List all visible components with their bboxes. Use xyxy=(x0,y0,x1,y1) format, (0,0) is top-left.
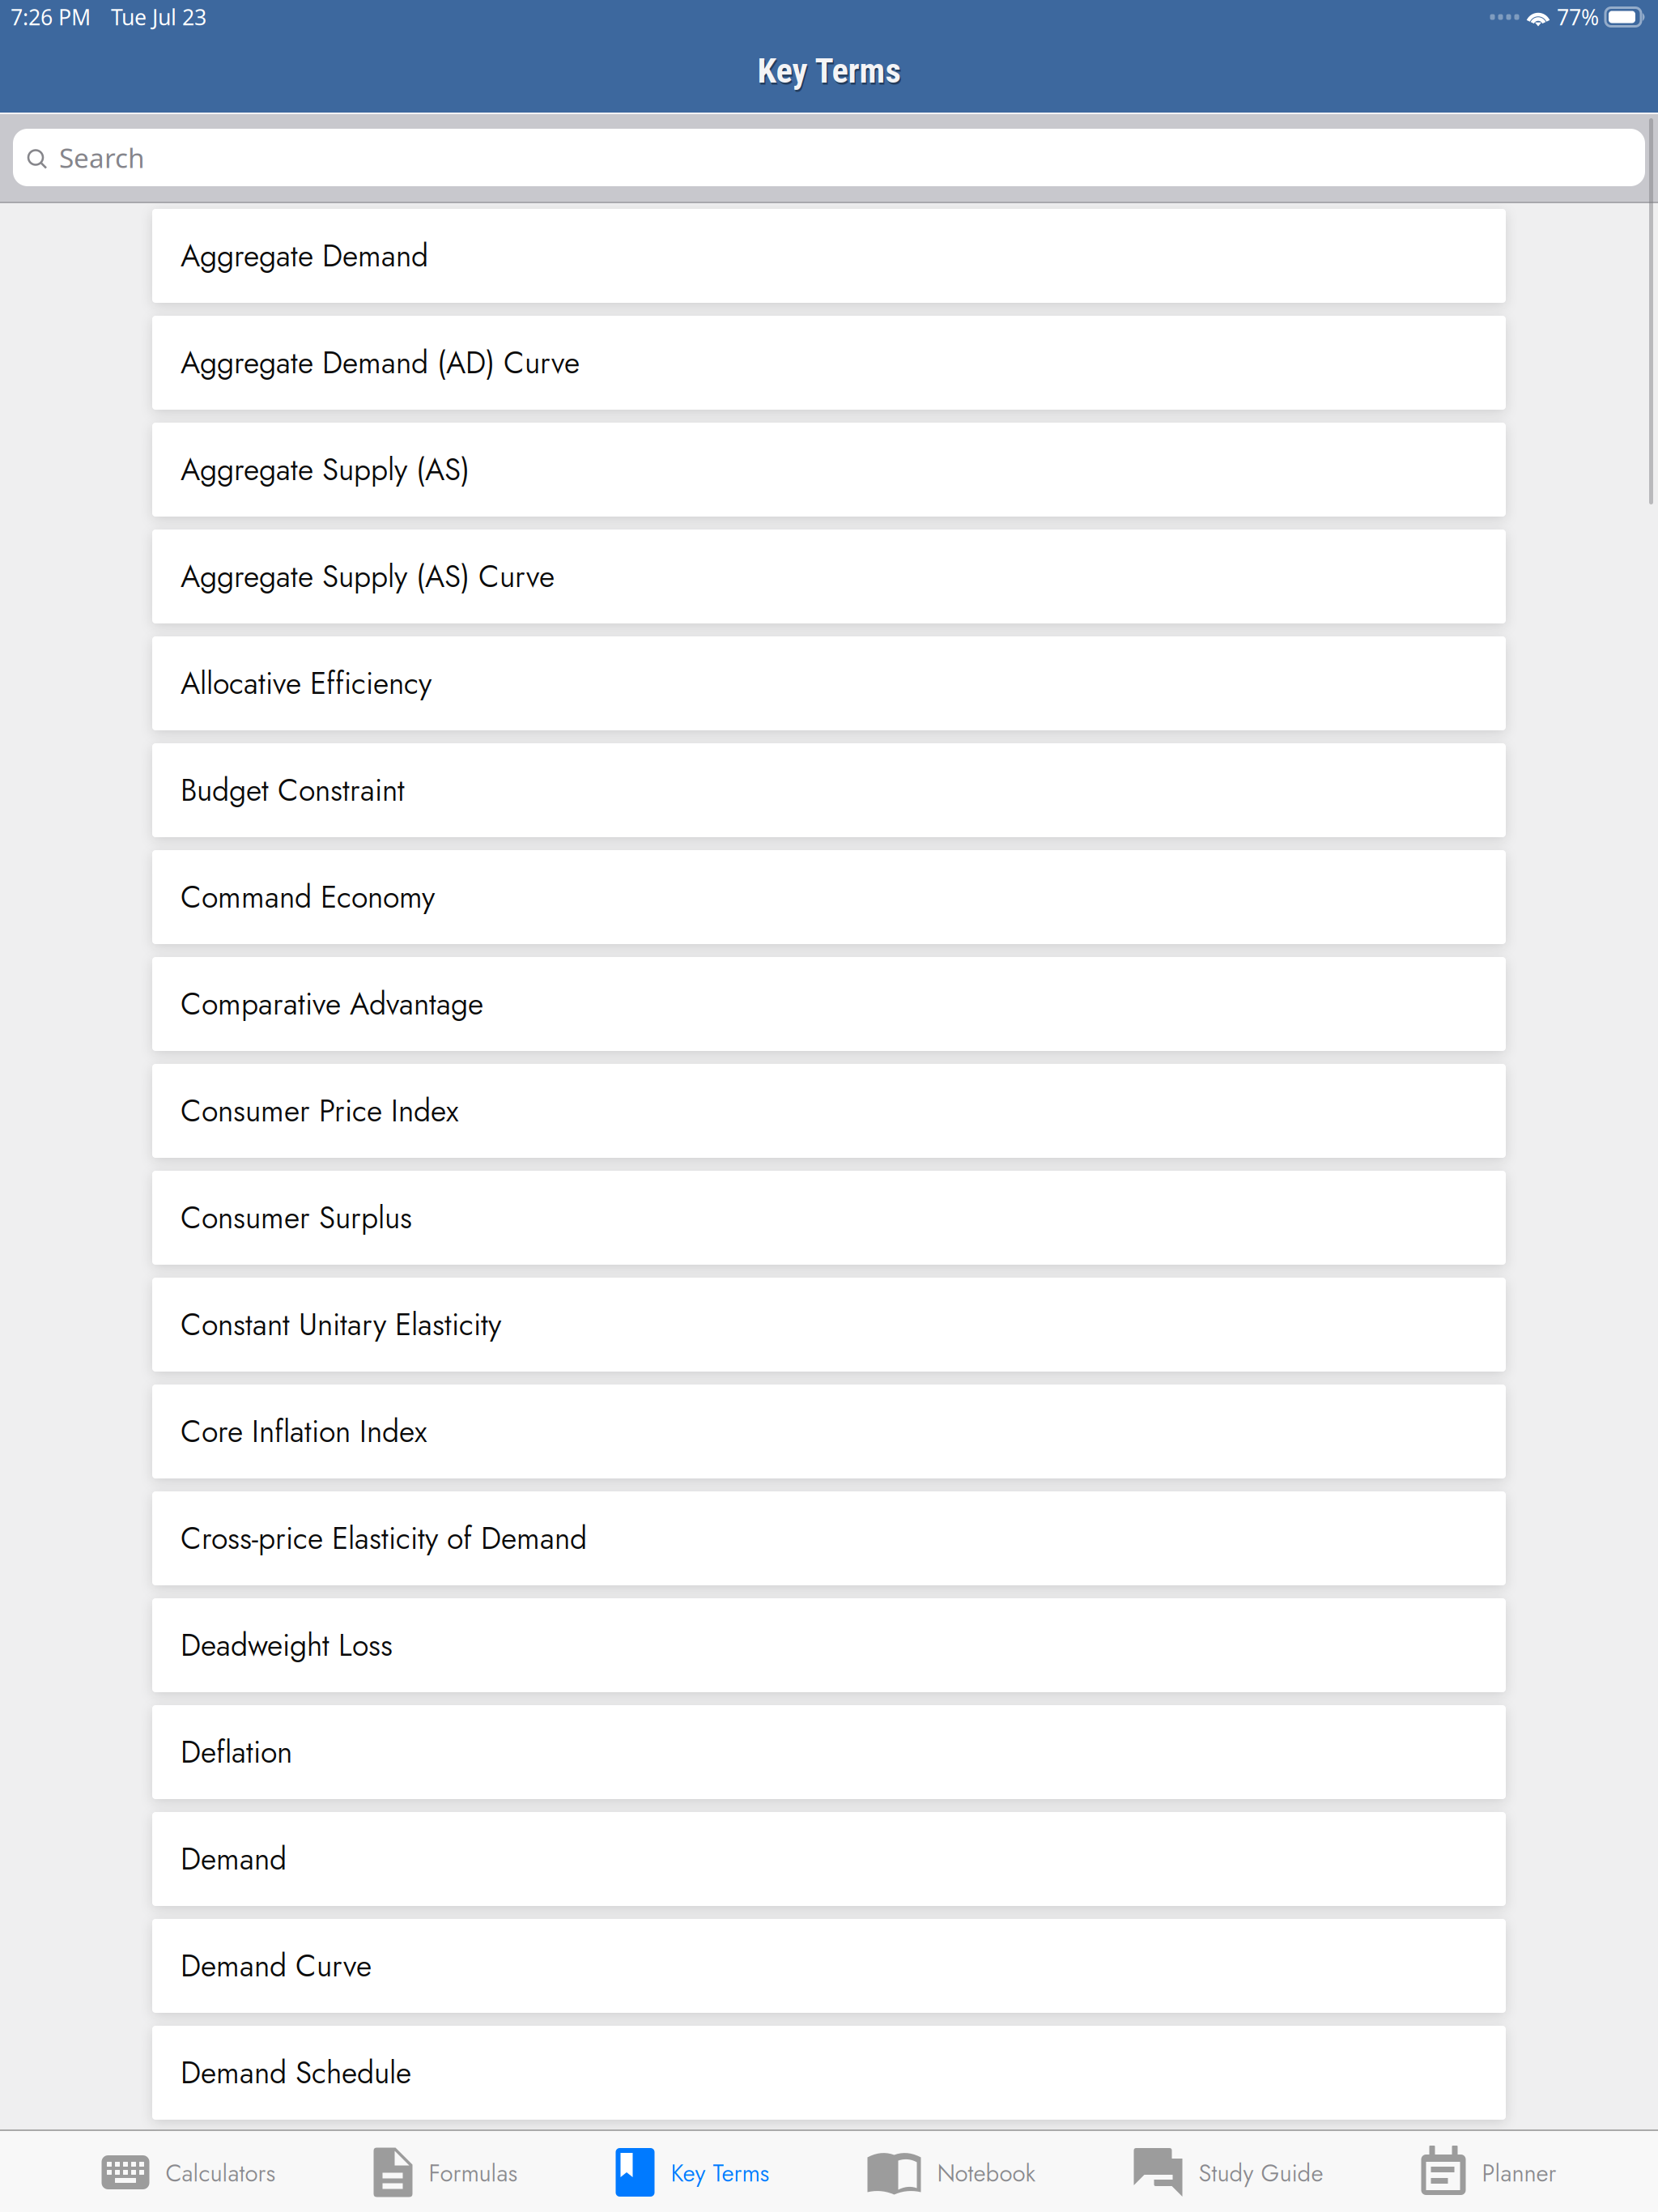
staticText: Demand Curve xyxy=(181,1944,372,1988)
button[interactable]: Cross-price Elasticity of Demand xyxy=(152,1491,1506,1585)
staticText: Deadweight Loss xyxy=(181,1623,393,1667)
button[interactable]: Aggregate Supply (AS) Curve xyxy=(152,530,1506,623)
staticText: Key Terms xyxy=(759,53,902,93)
button[interactable]: Planner xyxy=(1421,2131,1556,2212)
button[interactable]: Consumer Price Index xyxy=(152,1064,1506,1158)
staticText: Aggregate Supply (AS) xyxy=(181,448,470,491)
staticText: Cross-price Elasticity of Demand xyxy=(181,1516,587,1560)
staticText: Demand Schedule xyxy=(181,2051,411,2095)
button[interactable]: Deflation xyxy=(152,1705,1506,1799)
button[interactable]: Allocative Efficiency xyxy=(152,636,1506,730)
button[interactable]: Aggregate Demand (AD) Curve xyxy=(152,316,1506,410)
staticText: Aggregate Supply (AS) Curve xyxy=(181,555,555,598)
button[interactable]: Demand xyxy=(152,1812,1506,1906)
button[interactable]: Aggregate Demand xyxy=(152,209,1506,303)
button[interactable]: Calculators xyxy=(102,2131,276,2212)
staticText: Formulas xyxy=(429,2156,518,2190)
staticText: Key Terms xyxy=(757,51,901,91)
staticText: Consumer Surplus xyxy=(181,1196,412,1240)
staticText: Aggregate Demand xyxy=(181,234,428,278)
staticText: Constant Unitary Elasticity xyxy=(181,1303,501,1346)
staticText: Comparative Advantage xyxy=(181,982,483,1026)
staticText: Notebook xyxy=(937,2156,1036,2190)
button[interactable]: Core Inflation Index xyxy=(152,1385,1506,1478)
staticText: Allocative Efficiency xyxy=(181,661,432,705)
staticText: Aggregate Demand (AD) Curve xyxy=(181,341,580,385)
staticText: Key Terms xyxy=(671,2156,769,2190)
button[interactable]: Constant Unitary Elasticity xyxy=(152,1278,1506,1372)
button[interactable]: Command Economy xyxy=(152,850,1506,944)
button[interactable]: Demand Curve xyxy=(152,1919,1506,2013)
staticText: 7:26 PM xyxy=(11,3,91,31)
staticText: Command Economy xyxy=(181,875,435,919)
button[interactable]: Consumer Surplus xyxy=(152,1171,1506,1265)
staticText: Core Inflation Index xyxy=(181,1410,427,1453)
staticText: Demand xyxy=(181,1837,287,1881)
staticText: Search xyxy=(59,140,145,175)
button[interactable]: Search xyxy=(0,129,1658,186)
staticText: Study Guide xyxy=(1199,2156,1323,2190)
button[interactable]: Budget Constraint xyxy=(152,743,1506,837)
staticText: Deflation xyxy=(181,1730,292,1774)
staticText: Tue Jul 23 xyxy=(111,3,206,31)
button[interactable]: Study Guide xyxy=(1134,2131,1323,2212)
staticText: Planner xyxy=(1482,2156,1556,2190)
staticText: Consumer Price Index xyxy=(181,1089,458,1133)
button[interactable]: Comparative Advantage xyxy=(152,957,1506,1051)
staticText: Calculators xyxy=(166,2156,276,2190)
button[interactable]: Notebook xyxy=(867,2131,1036,2212)
button[interactable]: Key Terms xyxy=(616,2131,769,2212)
staticText: Budget Constraint xyxy=(181,768,405,812)
staticText: 77% xyxy=(1557,3,1599,31)
button[interactable]: Aggregate Supply (AS) xyxy=(152,423,1506,517)
button[interactable]: Deadweight Loss xyxy=(152,1598,1506,1692)
button[interactable]: Demand Schedule xyxy=(152,2026,1506,2120)
button[interactable]: Formulas xyxy=(374,2131,518,2212)
